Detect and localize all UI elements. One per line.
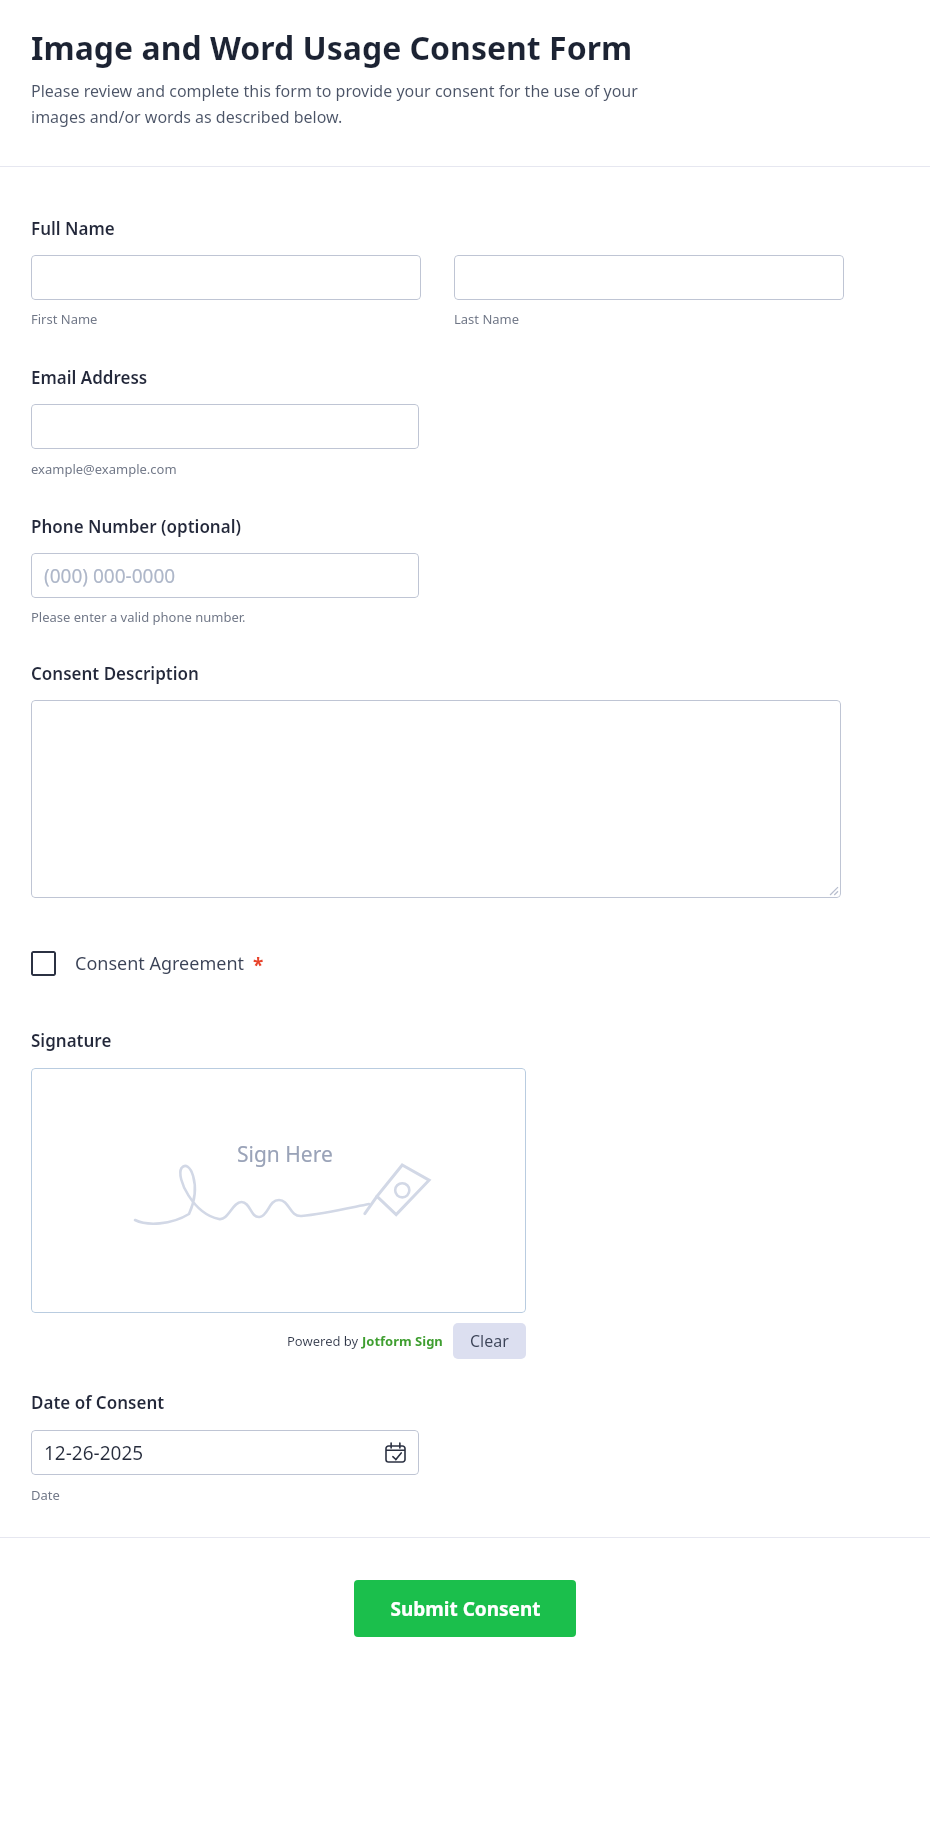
button[interactable]: Clear (453, 1323, 526, 1359)
staticText: Jotform Sign (362, 1332, 443, 1350)
staticText: Sign Here (237, 1140, 333, 1169)
staticText: Image and Word Usage Consent Form (31, 26, 633, 70)
button[interactable] (31, 700, 841, 898)
staticText: Powered by (287, 1332, 362, 1350)
button[interactable]: (000) 000-0000 (31, 553, 419, 598)
button[interactable]: Submit Consent (354, 1580, 576, 1637)
staticText: example@example.com (31, 460, 177, 478)
staticText: * (253, 952, 264, 978)
staticText: Full Name (31, 217, 115, 240)
staticText: First Name (31, 310, 98, 328)
staticText: Last Name (454, 310, 520, 328)
staticText: Please review and complete this form to … (31, 80, 691, 128)
staticText: Date (31, 1486, 60, 1504)
button[interactable]: Signature pad (31, 1068, 526, 1313)
staticText: Please enter a valid phone number. (31, 608, 246, 626)
button[interactable] (31, 255, 421, 300)
staticText: 12-26-2025 (44, 1440, 144, 1466)
button[interactable] (31, 404, 419, 449)
button[interactable]: 12-26-2025 (31, 1430, 419, 1475)
staticText: Signature (31, 1029, 112, 1052)
staticText: (000) 000-0000 (44, 563, 176, 589)
button[interactable]: Consent Agreement (31, 950, 264, 976)
staticText: Clear (470, 1330, 509, 1352)
button[interactable] (454, 255, 844, 300)
staticText: Phone Number (optional) (31, 515, 241, 538)
other: Open calendar (386, 1443, 405, 1462)
staticText: Email Address (31, 366, 148, 389)
staticText: Consent Agreement (75, 951, 245, 976)
staticText: Submit Consent (390, 1596, 541, 1622)
staticText: Consent Description (31, 662, 199, 685)
staticText: Date of Consent (31, 1391, 165, 1414)
